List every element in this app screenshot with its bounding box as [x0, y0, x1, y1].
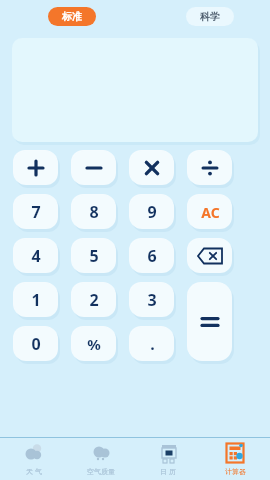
button[interactable]: 9 [130, 195, 174, 229]
button[interactable]: Divide [188, 151, 232, 185]
button[interactable]: 6 [130, 239, 174, 273]
staticText: 0 [31, 333, 41, 355]
staticText: AC [201, 203, 220, 222]
staticText: 3 [147, 289, 157, 311]
button[interactable]: . [130, 327, 174, 361]
button[interactable]: Multiply [130, 151, 174, 185]
button[interactable]: 空气质量 [67, 438, 134, 480]
staticText: 标准 [62, 10, 82, 23]
staticText: 8 [89, 201, 99, 223]
staticText: 空气质量 [87, 467, 115, 476]
button[interactable]: 计算器 [201, 438, 268, 480]
staticText: 日 历 [160, 467, 176, 477]
button[interactable]: 5 [72, 239, 116, 273]
button[interactable]: Add [14, 151, 58, 185]
button[interactable]: Backspace [188, 239, 232, 273]
staticText: 天 气 [26, 467, 42, 477]
button[interactable]: 1 [14, 283, 58, 317]
staticText: 7 [31, 201, 41, 223]
button[interactable]: 3 [130, 283, 174, 317]
button[interactable]: 2 [72, 283, 116, 317]
staticText: 计算器 [225, 467, 246, 476]
button[interactable]: Equals [188, 283, 232, 361]
button[interactable]: 7 [14, 195, 58, 229]
button[interactable]: 科学 [186, 7, 234, 26]
button[interactable]: 0 [14, 327, 58, 361]
button[interactable]: 标准 [48, 7, 96, 26]
staticText: % [87, 334, 101, 354]
button[interactable]: % [72, 327, 116, 361]
staticText: 科学 [200, 10, 220, 23]
staticText: 4 [31, 245, 41, 267]
button[interactable]: 日 历 [134, 438, 201, 480]
button[interactable]: 4 [14, 239, 58, 273]
staticText: . [150, 333, 155, 355]
button[interactable]: Subtract [72, 151, 116, 185]
button[interactable]: AC [188, 195, 232, 229]
staticText: 2 [89, 289, 99, 311]
staticText: 9 [147, 201, 157, 223]
staticText: 5 [89, 245, 99, 267]
button[interactable]: 8 [72, 195, 116, 229]
staticText: 1 [31, 289, 41, 311]
staticText: 6 [147, 245, 157, 267]
button[interactable]: 天 气 [0, 438, 67, 480]
